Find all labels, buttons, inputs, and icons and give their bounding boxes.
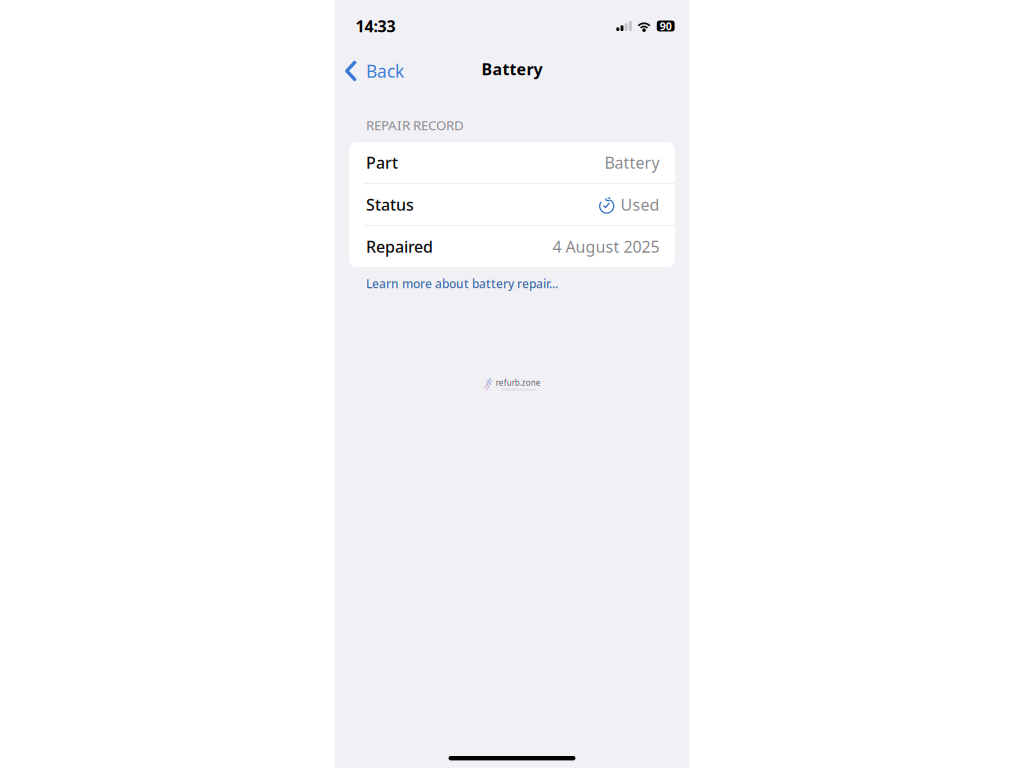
staticText: refurbished electronics	[502, 388, 535, 391]
staticText: Status	[366, 194, 414, 215]
staticText: Battery	[481, 58, 542, 80]
staticText: refurb.zone	[496, 377, 541, 388]
staticText: 4 August 2025	[552, 236, 659, 257]
button[interactable]: Status	[349, 184, 675, 225]
button[interactable]: Back	[335, 52, 414, 90]
button[interactable]: Learn more about battery repair...	[335, 267, 689, 300]
staticText: 90	[660, 19, 672, 33]
staticText: Part	[366, 152, 398, 173]
staticText: Learn more about battery repair...	[366, 275, 558, 291]
staticText: Back	[366, 59, 404, 82]
staticText: 14:33	[355, 15, 395, 37]
staticText: Used	[620, 194, 659, 215]
button[interactable]: Part	[349, 142, 675, 183]
staticText: REPAIR RECORD	[366, 116, 464, 134]
staticText: Repaired	[366, 236, 433, 257]
button[interactable]: Repaired	[349, 226, 675, 267]
staticText: Battery	[604, 152, 659, 173]
